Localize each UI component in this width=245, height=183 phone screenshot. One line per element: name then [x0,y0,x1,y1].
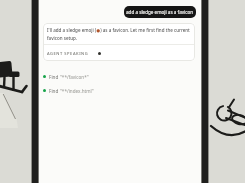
staticText: Find [49,88,60,94]
staticText: favicon setup. [47,35,78,41]
staticText: add a sledge emoji as a favicon [126,9,194,15]
staticText: Find [49,74,60,80]
button[interactable]: Find [43,73,89,80]
button[interactable]: add a sledge emoji as a favicon [124,6,196,18]
button[interactable]: AGENT SPEAKING [47,45,191,61]
staticText: "**/index.html" [60,88,94,94]
staticText: I'll add a sledge emoji (●) as a favicon… [47,27,190,33]
staticText: "**/favicon*" [60,74,89,80]
staticText: AGENT SPEAKING [47,51,89,56]
button[interactable]: Find [43,87,94,94]
